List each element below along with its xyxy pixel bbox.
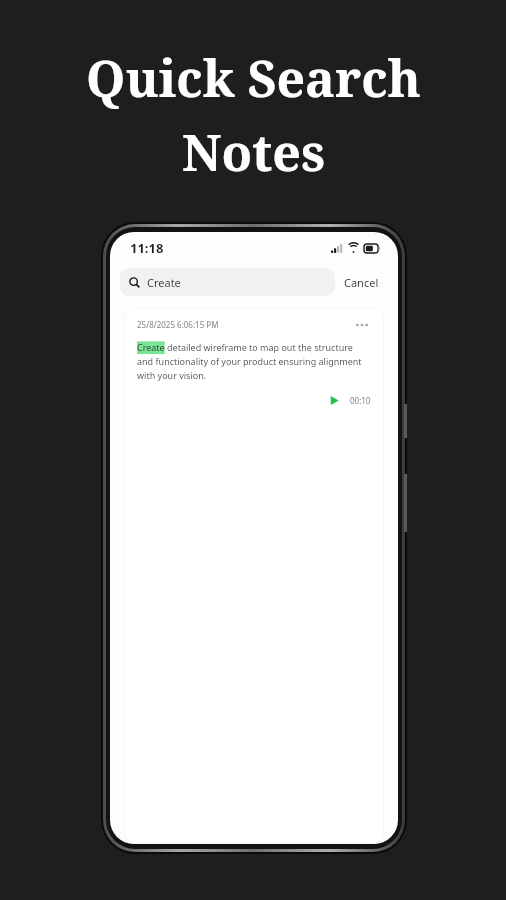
staticText: 25/8/2025 6:06:15 PM (137, 319, 219, 330)
staticText: Quick Search (86, 44, 421, 112)
button[interactable]: Play recording (328, 394, 341, 407)
staticText: Create (147, 275, 181, 290)
staticText: 11:18 (130, 239, 164, 257)
staticText: 00:10 (350, 395, 371, 406)
staticText: Cancel (344, 275, 379, 290)
staticText: Create detailed wireframe to map out the… (137, 341, 371, 382)
staticText: Notes (182, 118, 325, 186)
button[interactable]: 25/8/2025 6:06:15 PM (124, 308, 384, 844)
button[interactable]: Cancel (335, 269, 388, 296)
button[interactable]: More options (353, 320, 371, 330)
button[interactable]: Create (120, 268, 335, 296)
